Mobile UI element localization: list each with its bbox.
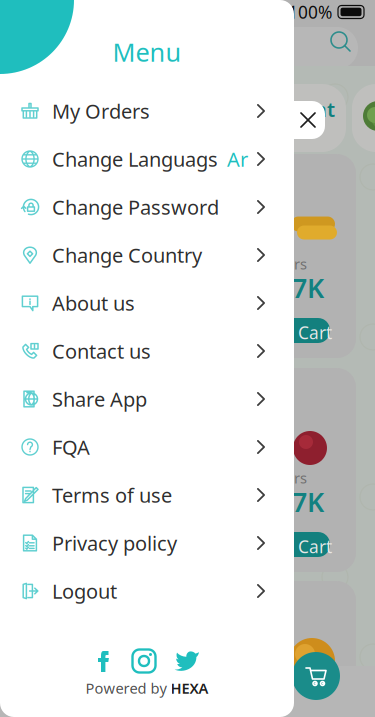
button[interactable]: Logout [0, 567, 294, 615]
staticText: ...nt [296, 96, 335, 123]
staticText: HEXA [170, 678, 208, 698]
staticText: Change Languags [52, 146, 218, 172]
button[interactable]: My Orders [0, 87, 294, 135]
staticText: Cart [298, 321, 332, 344]
staticText: 7K [292, 484, 324, 519]
staticText: Logout [52, 578, 117, 604]
staticText: rs [294, 468, 307, 487]
button[interactable]: About us [0, 279, 294, 327]
staticText: Menu [112, 35, 181, 69]
button[interactable]: Facebook [93, 649, 115, 673]
staticText: Share App [52, 386, 147, 412]
button[interactable]: Change Languags [0, 135, 294, 183]
staticText: Terms of use [52, 482, 172, 508]
button[interactable]: Change Country [0, 231, 294, 279]
button[interactable]: Share App [0, 375, 294, 423]
button[interactable]: Change Password [0, 183, 294, 231]
staticText: FQA [52, 434, 90, 460]
staticText: Change Country [52, 242, 202, 268]
button[interactable]: Cart [292, 652, 340, 700]
staticText: Privacy policy [52, 530, 177, 556]
staticText: Ar [227, 146, 248, 172]
staticText: Contact us [52, 338, 151, 364]
staticText: 7K [292, 697, 324, 717]
button[interactable]: Instagram [132, 649, 156, 673]
staticText: rs [294, 254, 307, 273]
button[interactable]: Twitter [173, 648, 201, 674]
button[interactable]: Terms of use [0, 471, 294, 519]
staticText: Change Password [52, 194, 219, 220]
button[interactable]: Contact us [0, 327, 294, 375]
staticText: Cart [298, 535, 332, 558]
staticText: 100% [288, 0, 332, 23]
staticText: rs [294, 681, 307, 700]
button[interactable]: Privacy policy [0, 519, 294, 567]
button[interactable]: FQA [0, 423, 294, 471]
staticText: About us [52, 290, 135, 316]
staticText: My Orders [52, 98, 150, 124]
staticText: Powered by [85, 678, 166, 698]
button[interactable]: Close menu [280, 101, 325, 139]
staticText: 7K [292, 270, 324, 305]
